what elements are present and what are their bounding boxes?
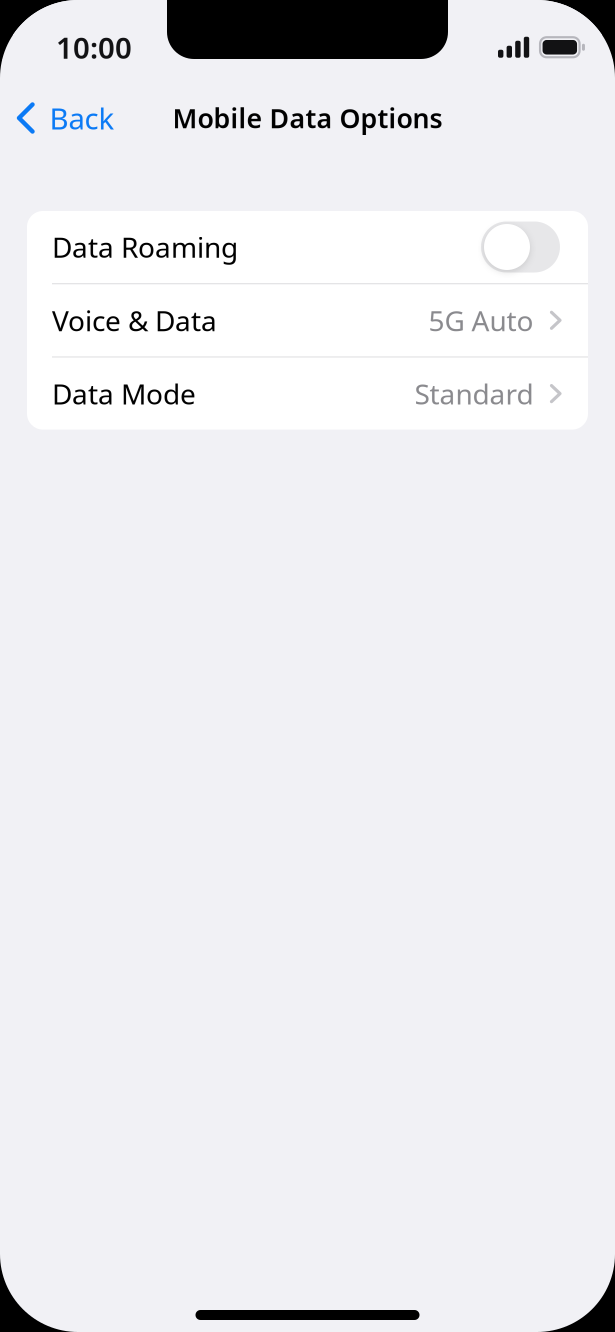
staticText: 10:00 bbox=[56, 28, 132, 67]
staticText: Back bbox=[49, 98, 114, 137]
staticText: 5G Auto bbox=[428, 302, 533, 339]
button[interactable]: Voice & Data bbox=[27, 284, 588, 356]
staticText: Data Roaming bbox=[52, 228, 238, 266]
button[interactable]: Data Mode bbox=[27, 358, 588, 430]
staticText: Data Mode bbox=[52, 375, 196, 412]
button[interactable]: Data Roaming bbox=[27, 211, 588, 283]
staticText: Standard bbox=[414, 375, 533, 412]
staticText: Voice & Data bbox=[52, 302, 217, 339]
staticText: Mobile Data Options bbox=[172, 100, 442, 136]
button[interactable]: Back bbox=[0, 90, 128, 146]
